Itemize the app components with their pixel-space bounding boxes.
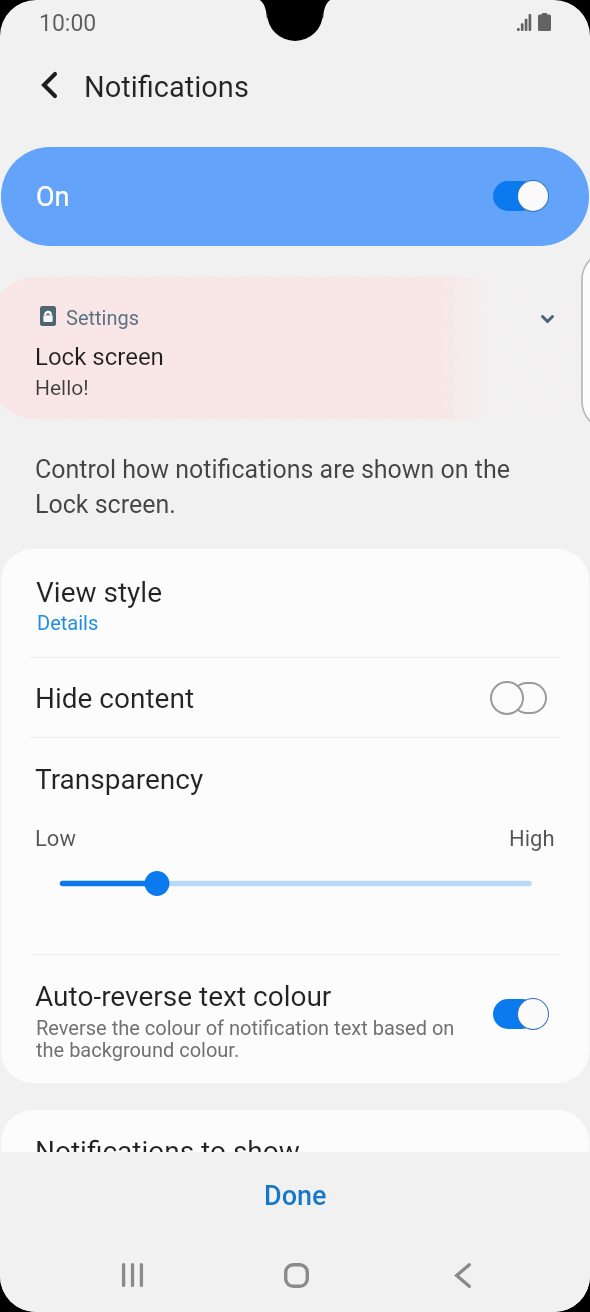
staticText: 10:00 (39, 10, 97, 37)
button[interactable]: Auto-reverse text colour (1, 955, 589, 1083)
staticText: Auto-reverse text colour (35, 980, 332, 1013)
staticText: Hide content (35, 682, 195, 715)
staticText: Lock screen (35, 343, 164, 371)
button[interactable]: Recent apps (92, 1246, 172, 1304)
staticText: Settings (66, 306, 140, 329)
button[interactable]: Back (423, 1246, 503, 1304)
staticText: Done (264, 1180, 327, 1212)
staticText: High (509, 826, 555, 852)
button[interactable]: Expand notification (529, 301, 565, 337)
button[interactable]: On (1, 147, 589, 246)
staticText: Notifications (84, 70, 249, 104)
staticText: Reverse the colour of notification text … (36, 1016, 455, 1062)
button[interactable]: Home (256, 1246, 336, 1304)
button[interactable]: Back (25, 61, 73, 109)
staticText: On (36, 181, 70, 213)
button[interactable]: View style (1, 549, 589, 657)
button[interactable]: Transparency slider (46, 862, 546, 902)
button[interactable]: Done (0, 1152, 590, 1240)
staticText: Transparency (35, 763, 204, 796)
staticText: Hello! (35, 376, 89, 401)
button[interactable]: Notifications to show (1, 1110, 589, 1210)
staticText: View style (36, 576, 162, 609)
staticText: Details (37, 611, 99, 634)
staticText: Notifications to show (35, 1135, 300, 1168)
staticText: Control how notifications are shown on t… (35, 455, 511, 519)
button[interactable]: Settings (0, 277, 578, 419)
button[interactable]: Hide content (1, 658, 589, 737)
staticText: Low (35, 826, 76, 852)
